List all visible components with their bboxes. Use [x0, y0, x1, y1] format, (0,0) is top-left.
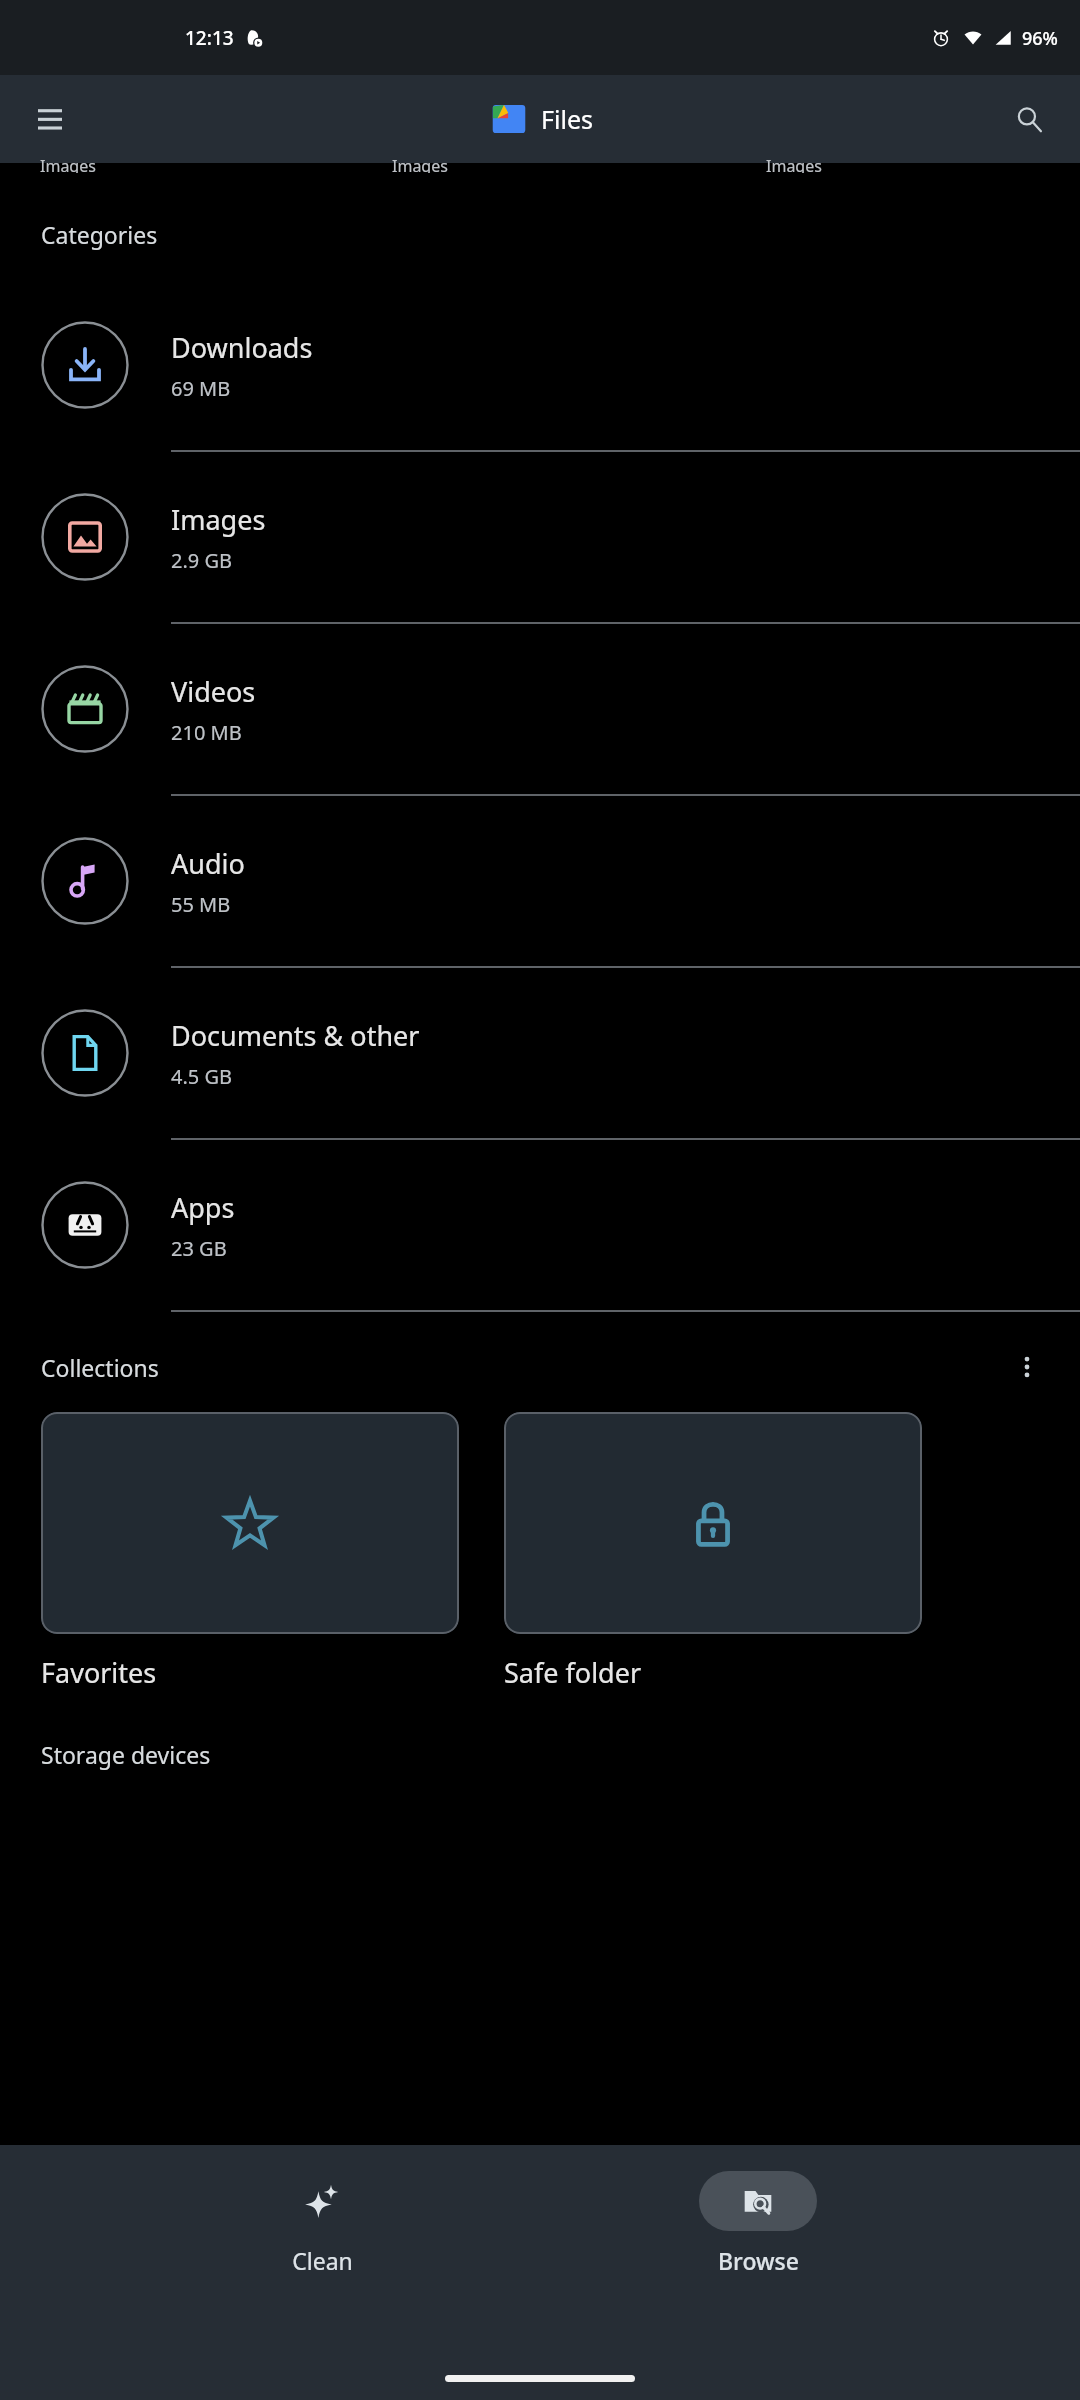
button[interactable]: Audio	[0, 796, 1080, 968]
staticText: Safe folder	[504, 1654, 642, 1691]
button[interactable]: Downloads	[0, 280, 1080, 452]
staticText: Categories	[41, 219, 158, 250]
staticText: 23 GB	[171, 1235, 227, 1262]
staticText: Favorites	[41, 1654, 157, 1691]
button[interactable]: Safe folder	[504, 1412, 922, 1691]
button[interactable]: Browse	[643, 2171, 873, 2276]
staticText: Storage devices	[41, 1739, 211, 1770]
button[interactable]: Apps	[0, 1140, 1080, 1312]
staticText: Collections	[41, 1352, 159, 1383]
staticText: 69 MB	[171, 375, 231, 402]
staticText: 4.5 GB	[171, 1063, 232, 1090]
button[interactable]: Documents & other	[0, 968, 1080, 1140]
button[interactable]: Favorites	[41, 1412, 459, 1691]
staticText: 12:13	[185, 25, 234, 51]
button[interactable]: Clean	[207, 2171, 437, 2276]
staticText: Images	[40, 155, 96, 173]
staticText: Images	[766, 155, 822, 173]
staticText: Images	[392, 155, 448, 173]
staticText: Clean	[292, 2245, 353, 2276]
staticText: 96%	[1022, 26, 1058, 51]
staticText: Videos	[171, 673, 256, 710]
button[interactable]: More options	[1002, 1342, 1052, 1392]
button[interactable]: Search	[1004, 94, 1054, 144]
staticText: Documents & other	[171, 1017, 420, 1054]
staticText: 2.9 GB	[171, 547, 232, 574]
staticText: Browse	[718, 2245, 799, 2276]
staticText: 55 MB	[171, 891, 231, 918]
staticText: Apps	[171, 1189, 235, 1226]
button[interactable]: Images	[0, 452, 1080, 624]
button[interactable]: Videos	[0, 624, 1080, 796]
staticText: 210 MB	[171, 719, 242, 746]
button[interactable]: Open navigation menu	[25, 94, 75, 144]
staticText: Audio	[171, 845, 245, 882]
staticText: Files	[541, 102, 593, 136]
staticText: Downloads	[171, 329, 313, 366]
staticText: Images	[171, 501, 266, 538]
